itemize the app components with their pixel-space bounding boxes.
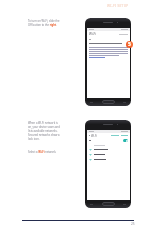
staticText: 25 (131, 222, 135, 226)
staticText: Wi-Fi (89, 32, 96, 36)
staticText: Select a Wi-Fi network. (28, 150, 57, 154)
staticText: Wi-Fi (91, 134, 98, 138)
button[interactable]: Wi-Fi (89, 31, 128, 37)
button[interactable]: Wi-Fi toggle On (89, 138, 128, 143)
button[interactable]: Wi-Fi (89, 133, 128, 138)
button[interactable]: Step marker 5 (126, 41, 133, 48)
button[interactable] (89, 157, 128, 162)
button[interactable] (89, 152, 128, 157)
staticText: To turn on Wi-Fi, slide the Off button t… (28, 19, 60, 27)
staticText: 5 (128, 41, 131, 48)
staticText: When a Wi-Fi network is on, your device … (28, 121, 60, 141)
button[interactable] (89, 147, 128, 152)
staticText: WI-FI SETUP (107, 4, 129, 8)
